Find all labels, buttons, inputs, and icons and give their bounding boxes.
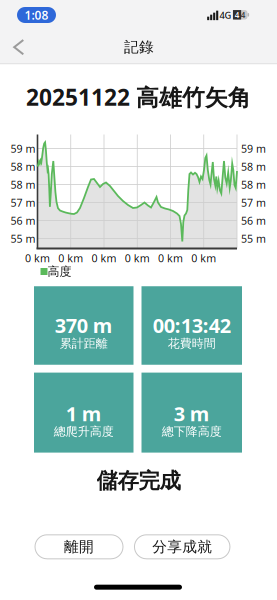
staticText: 0 km	[25, 251, 50, 265]
staticText: 56 m	[241, 213, 266, 228]
staticText: 3 m	[174, 400, 210, 427]
staticText: 56 m	[10, 213, 35, 228]
staticText: 累計距離	[60, 336, 108, 351]
staticText: 58 m	[10, 159, 35, 174]
staticText: 花費時間	[168, 336, 216, 351]
staticText: 00:13:42	[153, 312, 231, 339]
staticText: 4G	[219, 9, 231, 21]
staticText: 總下降高度	[162, 424, 222, 439]
staticText: 58 m	[10, 177, 35, 192]
staticText: 0 km	[125, 251, 150, 265]
staticText: 370 m	[55, 312, 113, 339]
staticText: 57 m	[10, 195, 35, 210]
staticText: 0 km	[91, 251, 116, 265]
staticText: 58 m	[241, 177, 266, 192]
staticText: 4	[235, 9, 240, 20]
staticText: 離開	[64, 538, 94, 556]
staticText: 4	[241, 9, 246, 20]
button[interactable]: Back	[9, 37, 29, 57]
staticText: 記錄	[124, 38, 154, 56]
staticText: 55 m	[241, 231, 266, 246]
staticText: 0 km	[191, 251, 216, 265]
staticText: 55 m	[10, 231, 35, 246]
button[interactable]: Return to call	[17, 7, 56, 23]
staticText: 儲存完成	[96, 468, 180, 494]
staticText: 高度	[47, 264, 71, 279]
staticText: 1:08	[24, 7, 48, 23]
staticText: 59 m	[10, 141, 35, 156]
staticText: 總爬升高度	[54, 424, 114, 439]
staticText: 分享成就	[152, 538, 212, 556]
staticText: 59 m	[241, 141, 266, 156]
staticText: 0 km	[58, 251, 83, 265]
button[interactable]: 離開	[35, 535, 123, 559]
staticText: 1 m	[66, 400, 102, 427]
staticText: 58 m	[241, 159, 266, 174]
staticText: 0 km	[158, 251, 183, 265]
button[interactable]: 分享成就	[134, 535, 230, 559]
staticText: 57 m	[241, 195, 266, 210]
staticText: 20251122 高雄竹矢角	[26, 82, 251, 112]
